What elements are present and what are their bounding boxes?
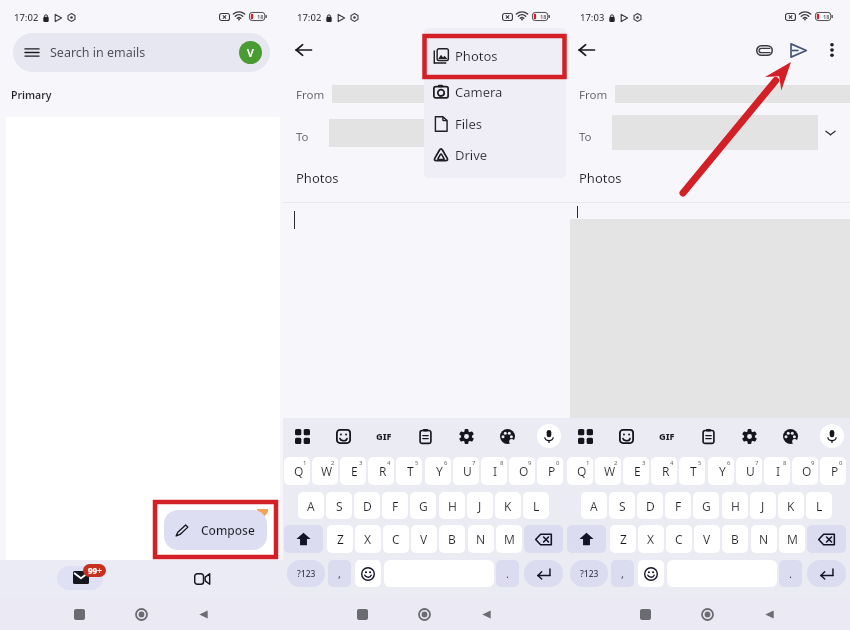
button[interactable]: R xyxy=(651,457,677,485)
button[interactable]: Search in emails xyxy=(13,33,270,72)
button[interactable]: C xyxy=(383,525,409,553)
button[interactable]: I xyxy=(481,457,507,485)
button[interactable]: Meet xyxy=(187,564,217,594)
button[interactable]: F xyxy=(665,492,691,519)
button[interactable]: R xyxy=(368,457,394,485)
button[interactable]: F xyxy=(382,492,408,519)
button[interactable]: Q xyxy=(284,457,310,485)
button[interactable]: T xyxy=(396,457,422,485)
button[interactable]: X xyxy=(355,525,381,553)
button[interactable]: grid xyxy=(291,425,313,447)
button[interactable]: Z xyxy=(610,525,636,553)
button[interactable]: D xyxy=(354,492,380,519)
button[interactable]: T xyxy=(679,457,705,485)
button[interactable]: A xyxy=(581,492,607,519)
button[interactable]: Shift xyxy=(284,525,323,553)
button[interactable]: V xyxy=(694,525,720,553)
button[interactable]: Symbols xyxy=(570,560,608,587)
button[interactable]: Home xyxy=(693,600,721,628)
button[interactable]: Back xyxy=(472,600,500,628)
button[interactable]: M xyxy=(779,525,805,553)
button[interactable]: O xyxy=(792,457,818,485)
button[interactable]: Voice input xyxy=(820,424,844,448)
button[interactable]: G xyxy=(693,492,719,519)
button[interactable]: Enter xyxy=(807,560,846,587)
button[interactable]: Back xyxy=(288,35,318,65)
button[interactable]: Recents xyxy=(348,600,376,628)
button[interactable]: Compose xyxy=(164,510,267,550)
button[interactable]: D xyxy=(637,492,663,519)
button[interactable]: Mail xyxy=(57,566,103,590)
button[interactable]: P xyxy=(820,457,846,485)
button[interactable]: sticker xyxy=(615,425,637,447)
button[interactable]: O xyxy=(509,457,535,485)
button[interactable]: E xyxy=(623,457,649,485)
button[interactable]: W xyxy=(312,457,338,485)
button[interactable]: H xyxy=(439,492,465,519)
button[interactable]: Comma xyxy=(328,560,351,587)
button[interactable]: K xyxy=(778,492,804,519)
button[interactable]: Files xyxy=(424,107,566,141)
button[interactable]: settings xyxy=(455,425,477,447)
button[interactable]: clipboard xyxy=(414,425,436,447)
button[interactable]: B xyxy=(439,525,465,553)
button[interactable]: Photos xyxy=(424,39,566,73)
button[interactable]: Camera xyxy=(424,75,566,109)
button[interactable]: A xyxy=(298,492,324,519)
button[interactable]: Q xyxy=(567,457,593,485)
button[interactable]: W xyxy=(595,457,621,485)
button[interactable]: Backspace xyxy=(807,525,846,553)
button[interactable]: K xyxy=(495,492,521,519)
button[interactable]: Enter xyxy=(524,560,563,587)
button[interactable]: Attach file xyxy=(750,36,778,64)
button[interactable]: M xyxy=(496,525,522,553)
button[interactable]: J xyxy=(467,492,493,519)
button[interactable]: X xyxy=(638,525,664,553)
button[interactable]: Send xyxy=(784,36,812,64)
button[interactable]: grid xyxy=(574,425,596,447)
button[interactable]: Period xyxy=(779,560,802,587)
button[interactable]: Shift xyxy=(567,525,606,553)
button[interactable]: Symbols xyxy=(287,560,325,587)
button[interactable]: Emoji xyxy=(638,560,664,587)
button[interactable]: clipboard xyxy=(697,425,719,447)
button[interactable]: Comma xyxy=(611,560,634,587)
button[interactable]: Y xyxy=(425,457,451,485)
button[interactable]: Recents xyxy=(65,600,93,628)
button[interactable]: Backspace xyxy=(524,525,563,553)
button[interactable]: Y xyxy=(708,457,734,485)
button[interactable]: Back xyxy=(571,35,601,65)
button[interactable]: sticker xyxy=(332,425,354,447)
button[interactable]: Emoji xyxy=(355,560,381,587)
button[interactable]: G xyxy=(410,492,436,519)
button[interactable]: gif xyxy=(373,425,395,447)
button[interactable]: Back xyxy=(189,600,217,628)
button[interactable]: Voice input xyxy=(537,424,561,448)
button[interactable]: palette xyxy=(779,425,801,447)
button[interactable]: Back xyxy=(755,600,783,628)
button[interactable]: U xyxy=(736,457,762,485)
button[interactable]: Recents xyxy=(631,600,659,628)
button[interactable]: J xyxy=(750,492,776,519)
button[interactable]: H xyxy=(722,492,748,519)
button[interactable]: settings xyxy=(738,425,760,447)
button[interactable]: More options xyxy=(819,37,845,63)
button[interactable]: palette xyxy=(496,425,518,447)
button[interactable]: Home xyxy=(410,600,438,628)
button[interactable]: Expand recipients xyxy=(817,120,843,146)
button[interactable]: S xyxy=(609,492,635,519)
button[interactable]: I xyxy=(764,457,790,485)
button[interactable]: gif xyxy=(656,425,678,447)
button[interactable]: E xyxy=(340,457,366,485)
button[interactable]: Home xyxy=(127,600,155,628)
button[interactable]: P xyxy=(537,457,563,485)
button[interactable]: L xyxy=(806,492,832,519)
button[interactable]: U xyxy=(453,457,479,485)
button[interactable]: L xyxy=(523,492,549,519)
button[interactable]: C xyxy=(666,525,692,553)
button[interactable]: S xyxy=(326,492,352,519)
button[interactable]: N xyxy=(468,525,494,553)
button[interactable]: Period xyxy=(496,560,519,587)
